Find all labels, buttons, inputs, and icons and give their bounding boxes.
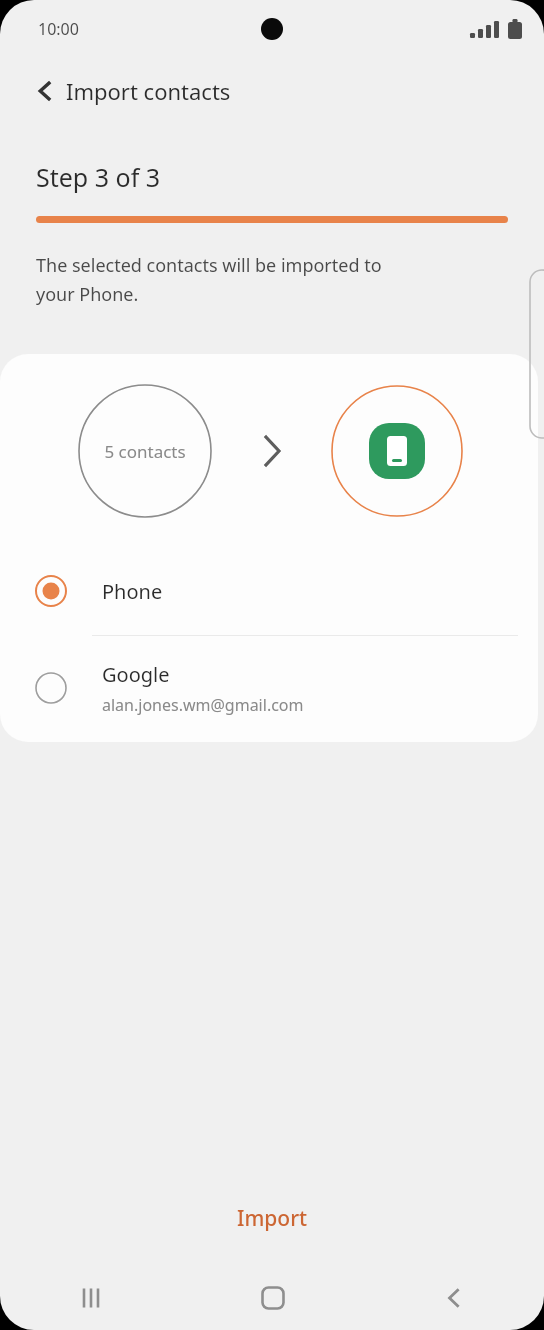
staticText: 5 contacts	[104, 440, 186, 463]
button[interactable]: Import	[0, 1192, 544, 1244]
staticText: Phone	[102, 578, 163, 605]
button[interactable]: Phone	[0, 557, 538, 625]
button[interactable]: Recent apps	[0, 1270, 182, 1326]
staticText: Step 3 of 3	[36, 160, 161, 194]
button[interactable]: Home	[182, 1270, 363, 1326]
staticText: The selected contacts will be imported t…	[36, 253, 382, 306]
button[interactable]: Back	[22, 68, 68, 114]
button[interactable]: Google	[0, 644, 538, 732]
staticText: Import	[237, 1204, 308, 1233]
staticText: Import contacts	[66, 76, 231, 106]
staticText: alan.jones.wm@gmail.com	[102, 694, 304, 716]
staticText: Google	[102, 661, 170, 688]
staticText: 10:00	[38, 18, 79, 40]
button[interactable]: Back	[363, 1270, 544, 1326]
